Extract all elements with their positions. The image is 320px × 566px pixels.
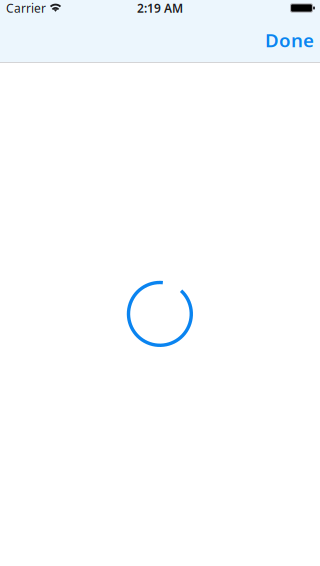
staticText: Done [265,28,314,52]
staticText: 2:19 AM [137,0,183,16]
button[interactable]: Done [259,20,320,62]
staticText: Carrier [6,0,46,16]
